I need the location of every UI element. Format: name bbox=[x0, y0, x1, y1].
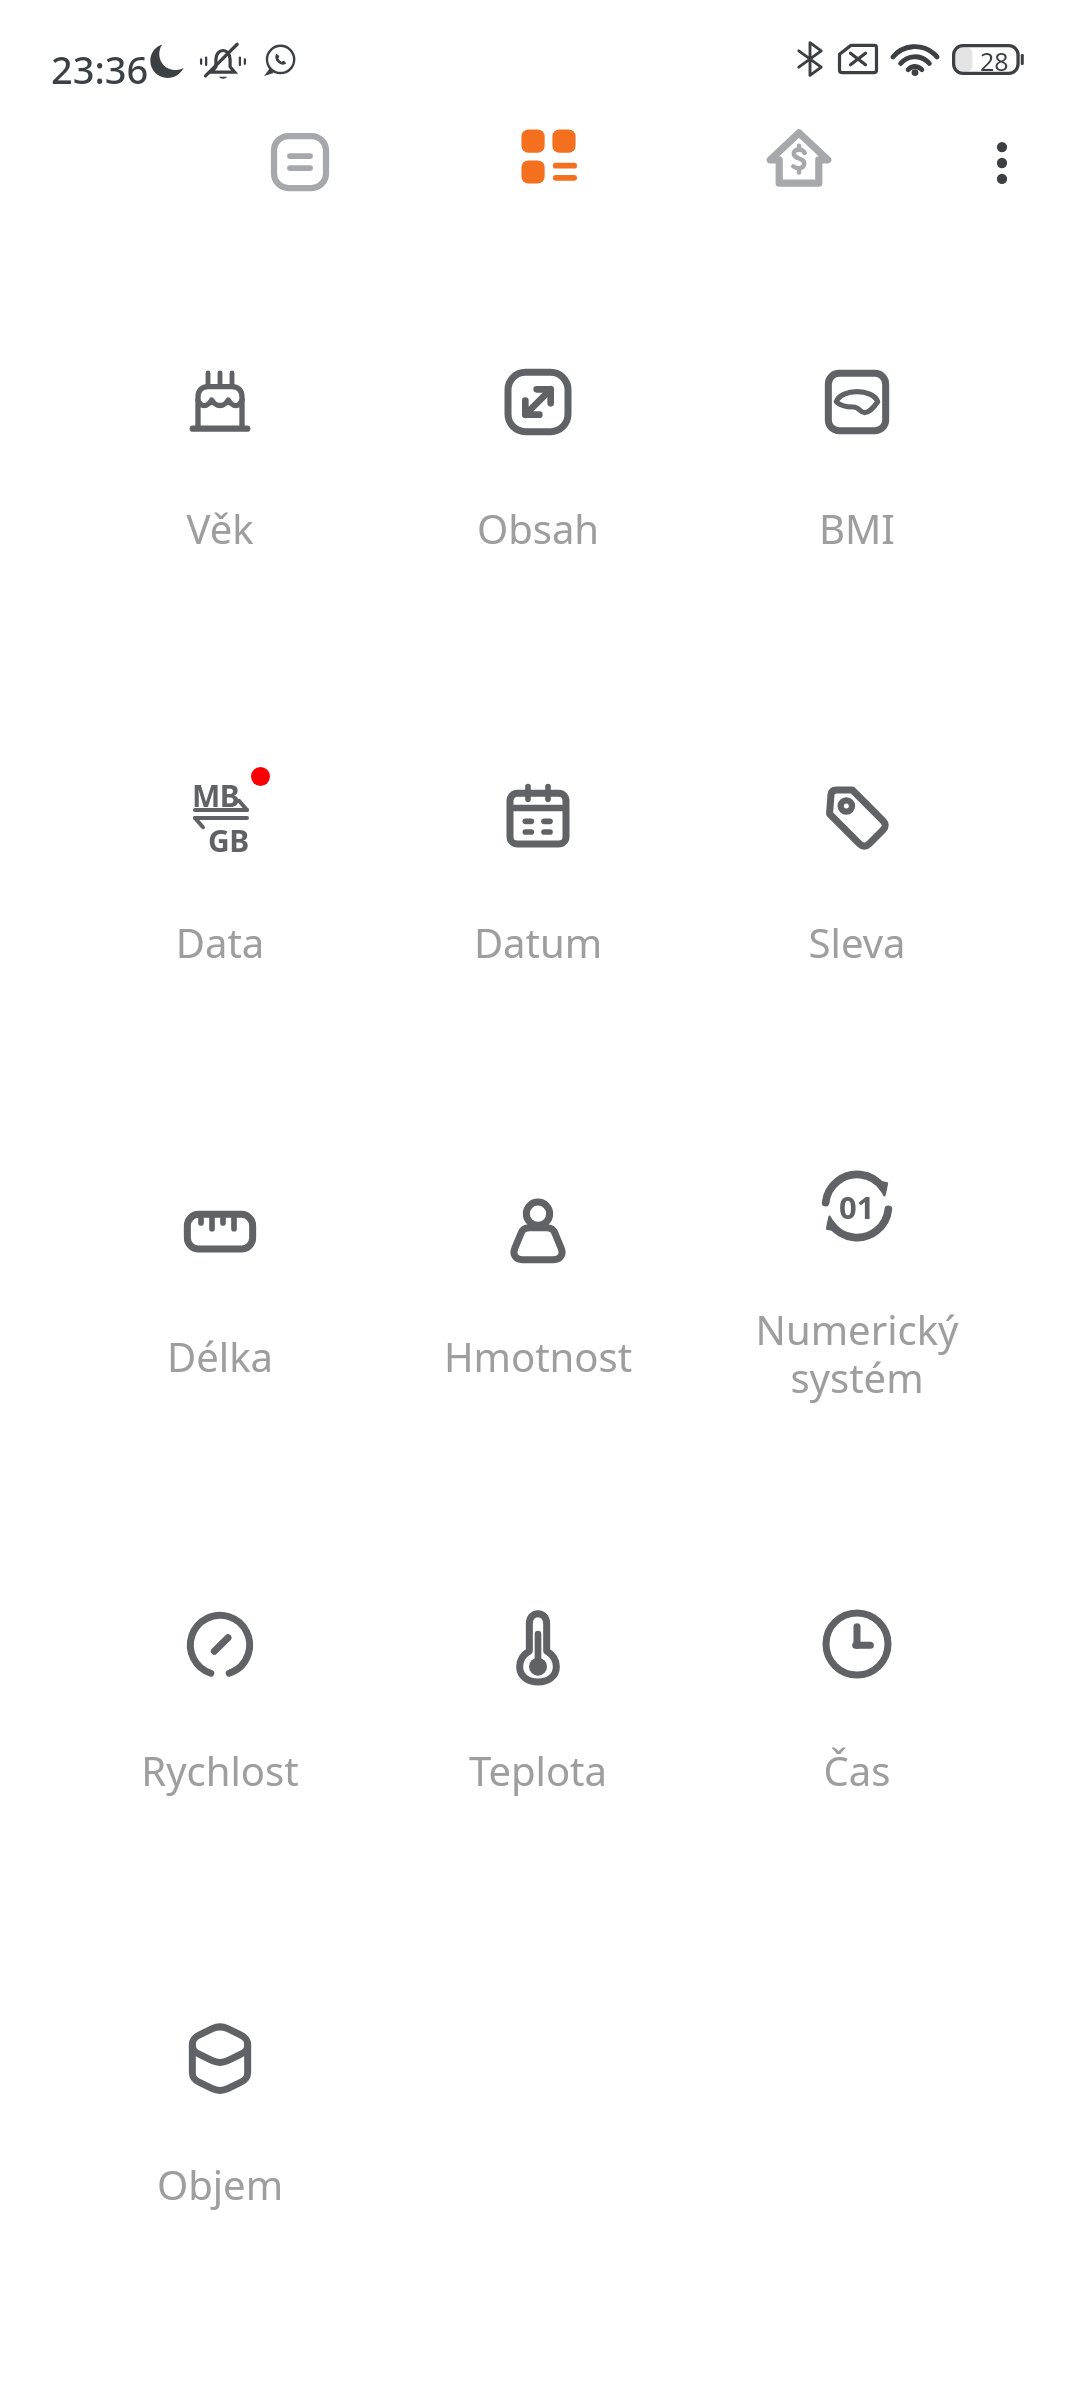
staticText: Čas bbox=[707, 1743, 1007, 1797]
staticText: Numerický systém bbox=[707, 1302, 1007, 1404]
staticText: 28 bbox=[980, 44, 1009, 75]
button[interactable]: Věk bbox=[70, 298, 370, 618]
staticText: BMI bbox=[707, 501, 1007, 555]
button[interactable]: Calculator bbox=[255, 117, 345, 207]
staticText: 23:36 bbox=[51, 43, 149, 95]
staticText: Délka bbox=[70, 1329, 370, 1383]
staticText: Hmotnost bbox=[388, 1329, 688, 1383]
button[interactable]: Tools bbox=[504, 112, 594, 202]
staticText: Rychlost bbox=[70, 1743, 370, 1797]
staticText: Datum bbox=[388, 915, 688, 969]
button[interactable]: Objem bbox=[70, 1954, 370, 2274]
staticText: Teplota bbox=[388, 1743, 688, 1797]
button[interactable]: Délka bbox=[70, 1126, 370, 1446]
button[interactable]: Čas bbox=[707, 1540, 1007, 1860]
staticText: Obsah bbox=[388, 501, 688, 555]
button[interactable]: Rychlost bbox=[70, 1540, 370, 1860]
staticText: Data bbox=[70, 915, 370, 969]
staticText: 01 bbox=[839, 1186, 875, 1228]
staticText: Objem bbox=[70, 2157, 370, 2211]
button[interactable]: Datum bbox=[388, 712, 688, 1032]
button[interactable]: More options bbox=[962, 123, 1042, 203]
button[interactable]: Obsah bbox=[388, 298, 688, 618]
staticText: MB bbox=[192, 775, 240, 816]
staticText: Věk bbox=[70, 501, 370, 555]
button[interactable]: Mortgage bbox=[754, 113, 844, 203]
staticText: Sleva bbox=[707, 915, 1007, 969]
button[interactable]: MB bbox=[70, 712, 370, 1032]
button[interactable]: Sleva bbox=[707, 712, 1007, 1032]
button[interactable]: 01 bbox=[707, 1126, 1007, 1446]
button[interactable]: Hmotnost bbox=[388, 1126, 688, 1446]
button[interactable]: BMI bbox=[707, 298, 1007, 618]
button[interactable]: Teplota bbox=[388, 1540, 688, 1860]
staticText: GB bbox=[208, 820, 249, 861]
